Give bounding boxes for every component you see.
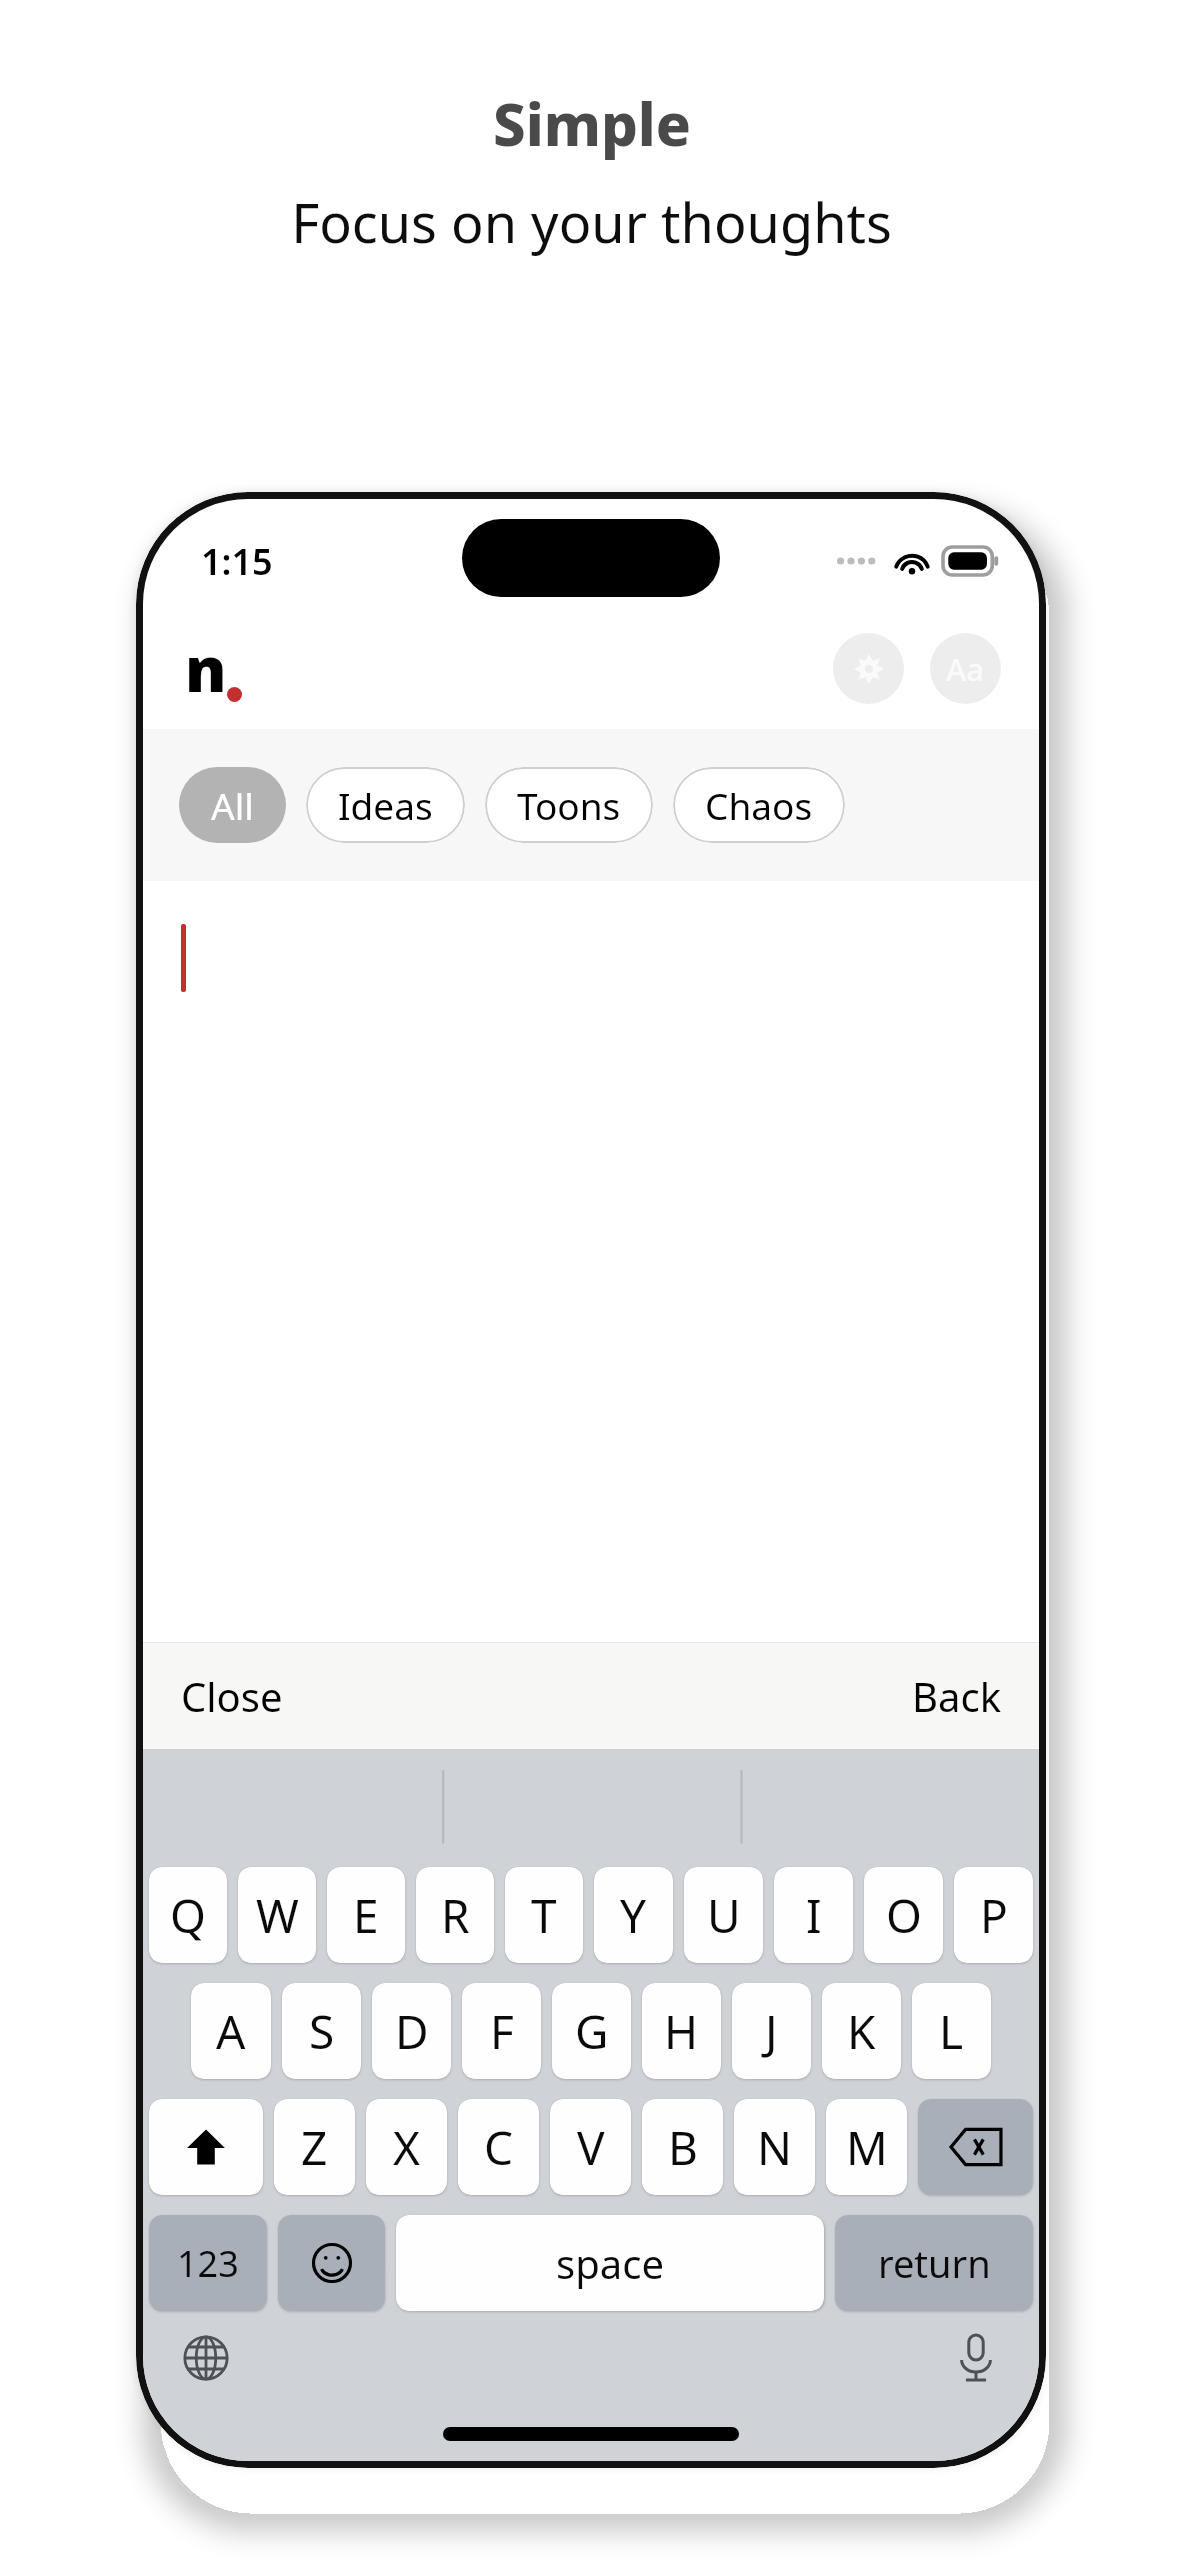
staticText: Q bbox=[170, 1884, 206, 1947]
staticText: Back bbox=[912, 1669, 1001, 1723]
button[interactable]: D bbox=[372, 1983, 451, 2079]
staticText: O bbox=[886, 1884, 922, 1947]
staticText: 1:15 bbox=[201, 537, 273, 586]
staticText: H bbox=[664, 2000, 699, 2063]
staticText: space bbox=[556, 2236, 664, 2290]
button[interactable]: I bbox=[774, 1867, 853, 1963]
staticText: Z bbox=[301, 2116, 328, 2179]
button[interactable]: C bbox=[458, 2099, 539, 2195]
button[interactable]: K bbox=[822, 1983, 901, 2079]
button[interactable]: A bbox=[191, 1983, 271, 2079]
button[interactable]: G bbox=[552, 1983, 631, 2079]
button[interactable]: Backspace bbox=[918, 2099, 1033, 2195]
button[interactable]: W bbox=[238, 1867, 316, 1963]
button[interactable]: Text size bbox=[930, 633, 1001, 704]
button[interactable]: H bbox=[642, 1983, 721, 2079]
button[interactable]: O bbox=[864, 1867, 943, 1963]
button[interactable]: P bbox=[954, 1867, 1033, 1963]
button[interactable]: Chaos bbox=[673, 767, 845, 843]
staticText: B bbox=[668, 2116, 698, 2179]
staticText: Toons bbox=[517, 780, 621, 830]
button[interactable]: Back bbox=[874, 1643, 1039, 1749]
staticText: Aa bbox=[946, 648, 985, 690]
staticText: Focus on your thoughts bbox=[291, 185, 892, 259]
button[interactable]: Dictation bbox=[939, 2321, 1013, 2395]
staticText: E bbox=[353, 1884, 379, 1947]
staticText: U bbox=[707, 1884, 741, 1947]
staticText: S bbox=[309, 2000, 335, 2063]
staticText: A bbox=[216, 2000, 246, 2063]
staticText: Close bbox=[181, 1669, 283, 1723]
staticText: n bbox=[185, 626, 227, 710]
button[interactable]: Settings bbox=[833, 633, 904, 704]
staticText: Simple bbox=[493, 84, 691, 163]
staticText: T bbox=[531, 1884, 557, 1947]
staticText: N bbox=[757, 2116, 792, 2179]
staticText: K bbox=[847, 2000, 876, 2063]
button[interactable]: M bbox=[826, 2099, 907, 2195]
staticText: R bbox=[441, 1884, 470, 1947]
staticText: X bbox=[393, 2116, 420, 2179]
staticText: 123 bbox=[177, 2239, 239, 2288]
button[interactable]: J bbox=[732, 1983, 811, 2079]
staticText: Chaos bbox=[705, 780, 813, 830]
button[interactable]: Ideas bbox=[306, 767, 465, 843]
button[interactable]: F bbox=[462, 1983, 541, 2079]
button[interactable]: 123 bbox=[149, 2215, 267, 2311]
button[interactable]: Shift bbox=[149, 2099, 263, 2195]
button[interactable]: N bbox=[734, 2099, 815, 2195]
staticText: I bbox=[806, 1884, 822, 1947]
staticText: C bbox=[484, 2116, 514, 2179]
staticText: F bbox=[490, 2000, 514, 2063]
staticText: G bbox=[575, 2000, 609, 2063]
button[interactable]: Z bbox=[274, 2099, 355, 2195]
button[interactable]: X bbox=[366, 2099, 447, 2195]
staticText: Y bbox=[620, 1884, 647, 1947]
button[interactable]: Toons bbox=[485, 767, 653, 843]
button[interactable]: V bbox=[550, 2099, 631, 2195]
staticText: M bbox=[846, 2116, 888, 2179]
button[interactable]: U bbox=[684, 1867, 763, 1963]
button[interactable]: E bbox=[327, 1867, 405, 1963]
button[interactable]: Emoji bbox=[278, 2215, 385, 2311]
staticText: V bbox=[577, 2116, 605, 2179]
button[interactable]: B bbox=[642, 2099, 723, 2195]
button[interactable]: S bbox=[282, 1983, 361, 2079]
staticText: All bbox=[211, 780, 254, 830]
button[interactable]: Next keyboard bbox=[169, 2321, 243, 2395]
button[interactable]: R bbox=[416, 1867, 494, 1963]
button[interactable]: Q bbox=[149, 1867, 227, 1963]
button[interactable]: space bbox=[396, 2215, 824, 2311]
staticText: W bbox=[256, 1884, 299, 1947]
staticText: P bbox=[980, 1884, 1008, 1947]
staticText: Ideas bbox=[338, 780, 433, 830]
button[interactable]: Y bbox=[594, 1867, 673, 1963]
staticText: L bbox=[939, 2000, 964, 2063]
staticText: J bbox=[765, 2000, 778, 2063]
button[interactable]: return bbox=[835, 2215, 1033, 2311]
staticText: D bbox=[395, 2000, 429, 2063]
button[interactable]: L bbox=[912, 1983, 991, 2079]
button[interactable]: Close bbox=[143, 1643, 321, 1749]
staticText: return bbox=[878, 2237, 991, 2289]
button[interactable]: All bbox=[179, 767, 286, 843]
button[interactable]: T bbox=[505, 1867, 583, 1963]
